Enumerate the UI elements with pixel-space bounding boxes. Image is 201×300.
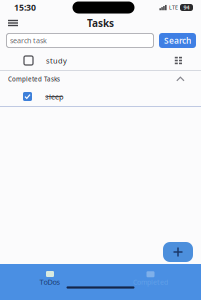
- button[interactable]: sleep: [0, 87, 201, 106]
- staticText: Completed Tasks: [8, 75, 60, 83]
- button[interactable]: Completed: [100, 271, 201, 287]
- staticText: study: [46, 55, 67, 66]
- staticText: 94: [183, 4, 189, 11]
- staticText: sleep: [45, 91, 64, 102]
- button[interactable]: Completed Tasks: [0, 71, 201, 87]
- staticText: Search: [164, 35, 191, 46]
- staticText: search task: [10, 36, 47, 45]
- button[interactable]: search task: [6, 33, 154, 48]
- button[interactable]: Menu: [0, 17, 18, 29]
- staticText: Tasks: [87, 16, 114, 30]
- button[interactable]: Add task: [163, 242, 193, 262]
- staticText: Completed: [133, 277, 168, 287]
- staticText: LTE: [169, 4, 178, 11]
- staticText: 15:30: [14, 2, 36, 13]
- staticText: ToDos: [39, 277, 60, 287]
- button[interactable]: ToDos: [0, 271, 100, 287]
- button[interactable]: study: [0, 51, 201, 70]
- button[interactable]: Search: [159, 33, 196, 48]
